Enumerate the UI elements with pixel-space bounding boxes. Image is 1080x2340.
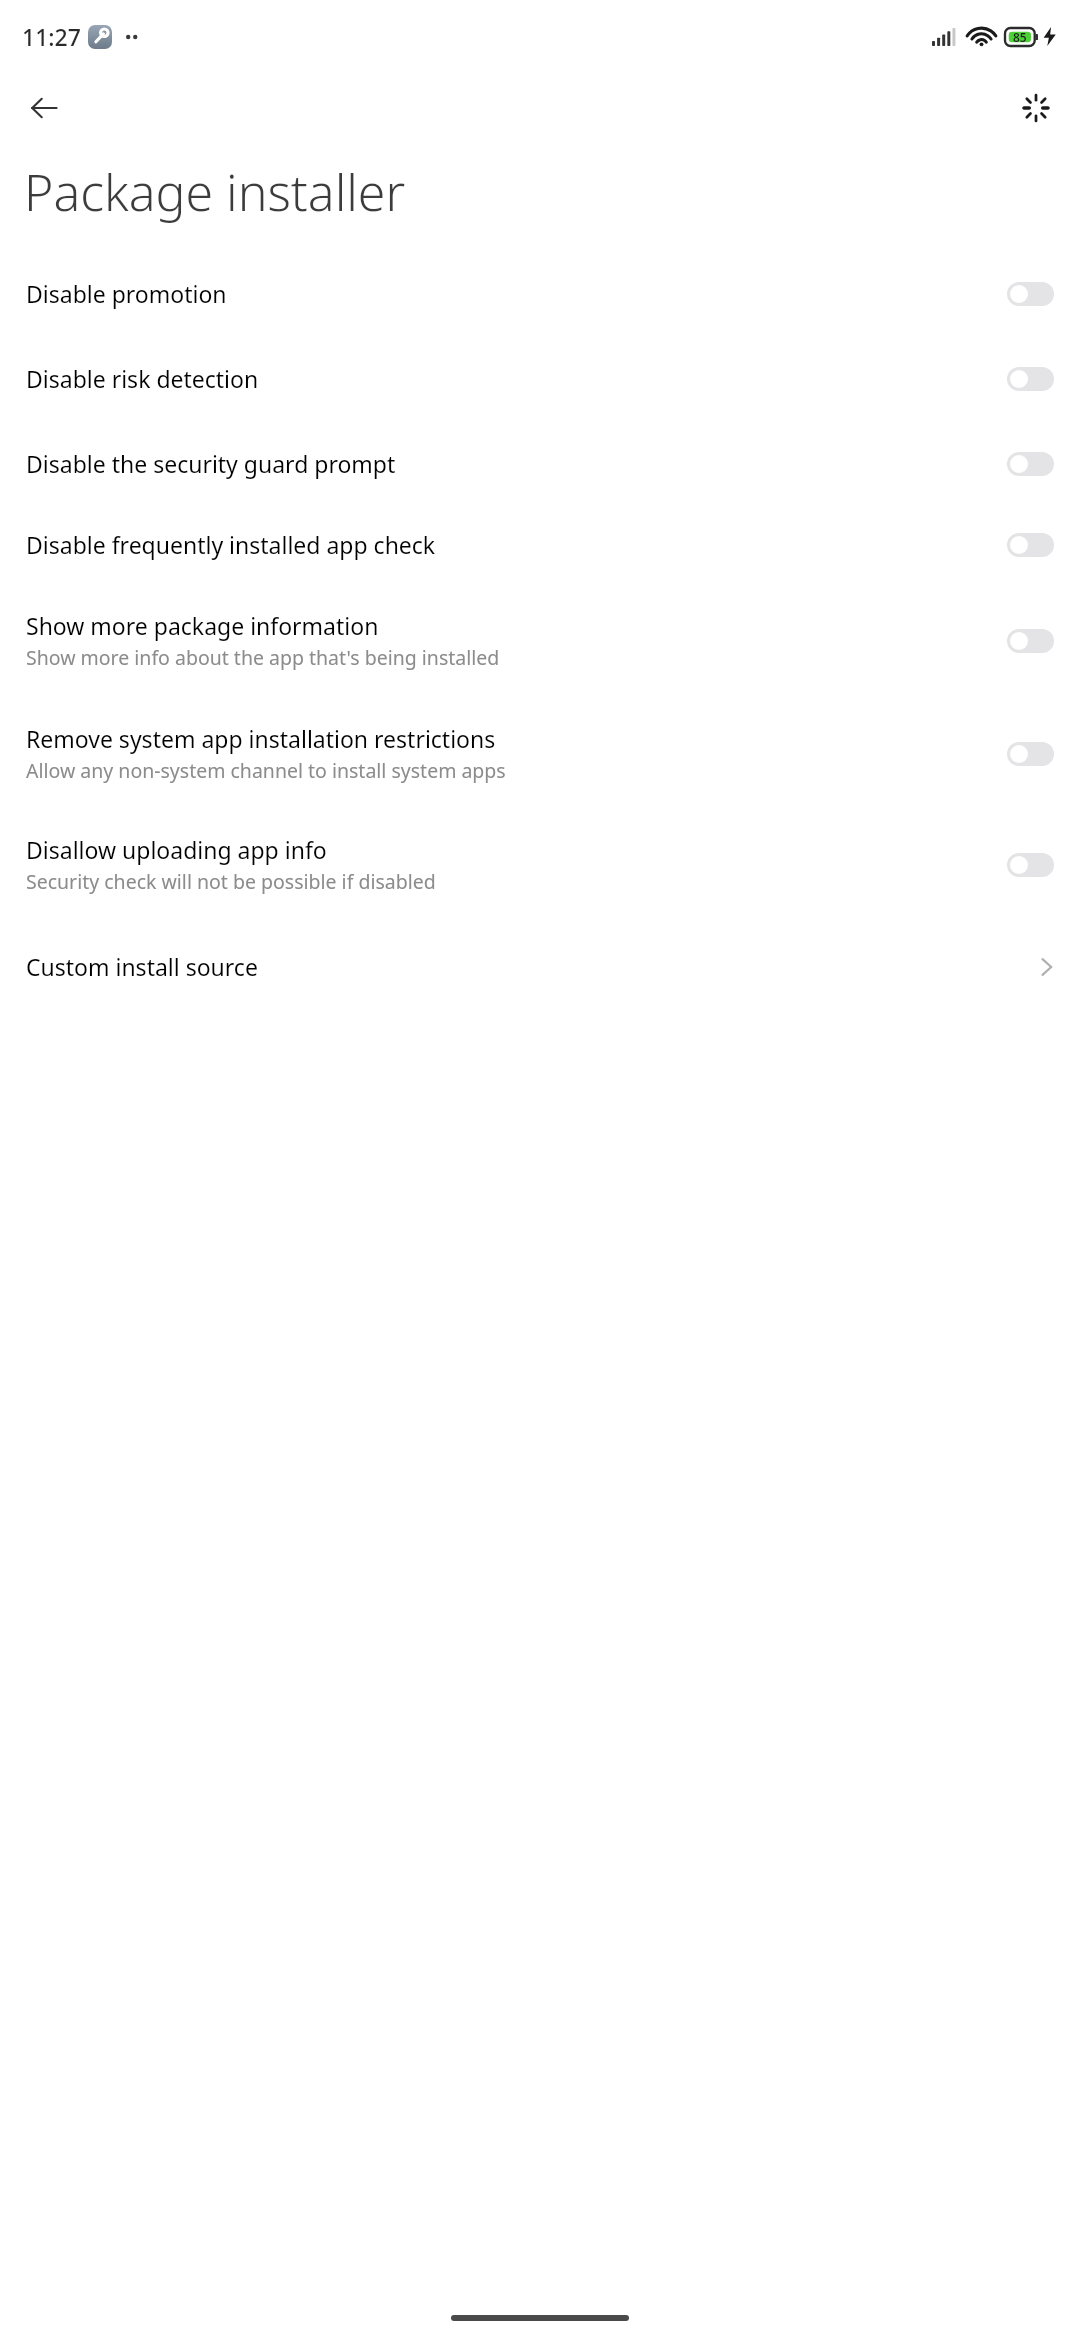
staticText: Disable promotion — [26, 278, 227, 309]
staticText: Remove system app installation restricti… — [26, 723, 496, 754]
staticText: 11:27 — [22, 21, 81, 52]
staticText: Show more info about the app that's bein… — [26, 644, 500, 671]
staticText: Disallow uploading app info — [26, 834, 327, 865]
button[interactable]: Show more package information — [0, 594, 1080, 687]
button[interactable]: Disallow uploading app info — [0, 818, 1080, 911]
button[interactable]: Disable promotion — [0, 262, 1080, 325]
staticText: Security check will not be possible if d… — [26, 868, 436, 895]
button[interactable]: Loading — [1012, 84, 1060, 132]
staticText: Disable risk detection — [26, 363, 259, 394]
staticText: Package installer — [24, 158, 406, 226]
button[interactable]: Disable risk detection — [0, 347, 1080, 410]
button[interactable]: Custom install source — [0, 933, 1080, 1000]
button[interactable]: Remove system app installation restricti… — [0, 707, 1080, 800]
button[interactable]: Disable the security guard prompt — [0, 432, 1080, 495]
button[interactable]: Back — [20, 84, 68, 132]
button[interactable]: Disable frequently installed app check — [0, 513, 1080, 576]
staticText: Custom install source — [26, 951, 1040, 982]
staticText: Disable the security guard prompt — [26, 448, 396, 479]
staticText: 85 — [1013, 29, 1027, 45]
staticText: Disable frequently installed app check — [26, 529, 436, 560]
staticText: Allow any non-system channel to install … — [26, 757, 506, 784]
staticText: Show more package information — [26, 610, 379, 641]
